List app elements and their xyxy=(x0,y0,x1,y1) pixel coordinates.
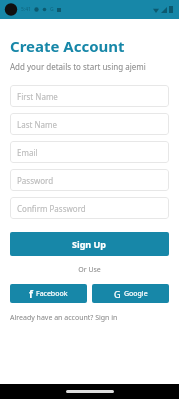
staticText: Already have an account? Sign in xyxy=(10,313,118,323)
staticText: G xyxy=(114,288,121,300)
button[interactable]: Last Name xyxy=(10,113,169,135)
staticText: Facebook xyxy=(36,289,68,299)
staticText: Create Account xyxy=(10,36,125,56)
staticText: G xyxy=(50,6,54,13)
staticText: Password xyxy=(17,175,54,186)
staticText: Google xyxy=(124,289,148,299)
staticText: Or Use xyxy=(10,265,169,275)
button[interactable]: f xyxy=(10,284,87,303)
staticText: First Name xyxy=(17,91,58,102)
button[interactable]: First Name xyxy=(10,85,169,107)
button[interactable]: G xyxy=(92,284,169,303)
button[interactable]: Password xyxy=(10,169,169,191)
button[interactable]: Email xyxy=(10,141,169,163)
staticText: Sign Up xyxy=(72,238,107,250)
staticText: Last Name xyxy=(17,119,58,130)
other: Home gesture bar xyxy=(0,384,179,399)
staticText: 5:41 xyxy=(21,6,31,13)
button[interactable]: Confirm Password xyxy=(10,197,169,219)
button[interactable]: Sign Up xyxy=(10,232,169,256)
staticText: Email xyxy=(17,147,38,158)
button[interactable]: Already have an account? Sign in xyxy=(10,313,118,323)
staticText: Add your details to start using ajemi xyxy=(10,61,146,72)
staticText: f xyxy=(29,287,33,301)
staticText: Confirm Password xyxy=(17,203,86,214)
